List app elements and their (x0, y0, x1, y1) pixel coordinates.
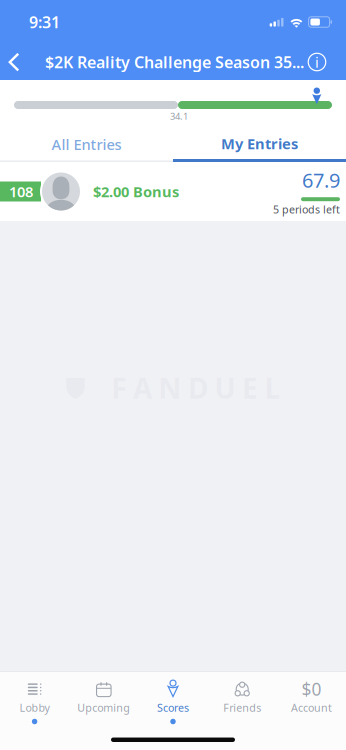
button[interactable]: Info (300, 44, 334, 80)
staticText: Scores (157, 701, 189, 715)
staticText: $2.00 Bonus (93, 182, 179, 201)
staticText: Lobby (20, 701, 50, 715)
button[interactable]: $0 (277, 672, 346, 727)
staticText: 5 periods left (273, 202, 340, 216)
button[interactable]: My Entries (173, 128, 346, 162)
staticText: 108 (9, 182, 33, 201)
button[interactable]: Lobby (0, 672, 69, 727)
staticText: Upcoming (77, 701, 130, 715)
staticText: All Entries (51, 134, 121, 154)
staticText: 67.9 (302, 167, 340, 193)
button[interactable]: Scores (138, 672, 208, 727)
button[interactable]: All Entries (0, 128, 173, 162)
staticText: Friends (223, 701, 261, 715)
button[interactable]: 108 (0, 162, 346, 221)
staticText: $2K Reality Challenge Season 35... (45, 51, 304, 73)
staticText: $0 (301, 678, 321, 701)
staticText: 9:31 (29, 11, 60, 33)
staticText: My Entries (221, 134, 298, 153)
staticText: Account (291, 701, 332, 715)
button[interactable]: Back (0, 44, 32, 80)
button[interactable]: Upcoming (69, 672, 138, 727)
staticText: i (315, 52, 319, 72)
button[interactable]: Friends (208, 672, 277, 727)
staticText: 34.1 (170, 110, 188, 122)
